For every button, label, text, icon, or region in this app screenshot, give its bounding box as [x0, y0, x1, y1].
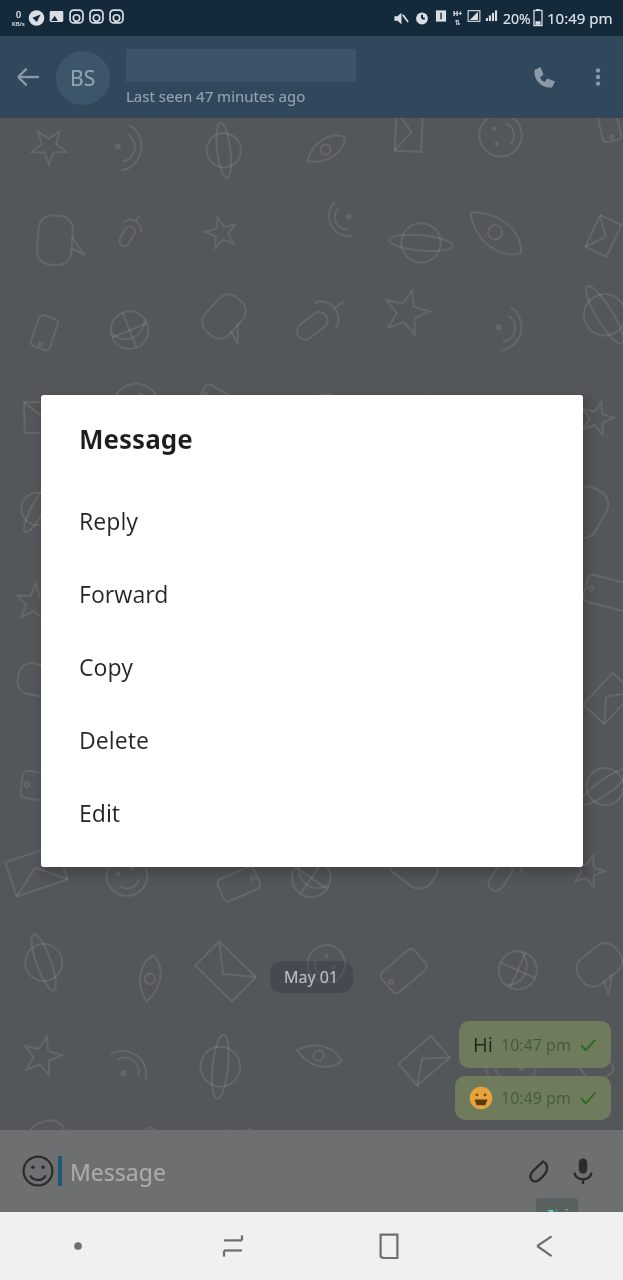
staticText: H+	[453, 9, 463, 19]
button[interactable]: BS	[56, 49, 515, 106]
button[interactable]: Forward	[41, 557, 583, 630]
staticText: Message	[70, 1156, 517, 1187]
button[interactable]: 10:49 pm	[455, 1076, 611, 1120]
staticText: 10:49 pm	[547, 8, 613, 28]
button[interactable]: Home	[311, 1212, 467, 1280]
button[interactable]: Back	[0, 49, 56, 105]
staticText: Edit	[79, 797, 121, 828]
button[interactable]: Emoji	[18, 1151, 58, 1191]
button[interactable]: Delete	[41, 703, 583, 776]
staticText: KB/s	[12, 20, 25, 28]
staticText: Message	[79, 421, 193, 456]
staticText: May 01	[284, 966, 339, 988]
staticText: ⇅	[455, 19, 461, 27]
staticText: 10:47 pm	[501, 1034, 571, 1056]
button[interactable]: Attach	[517, 1149, 561, 1193]
staticText: 20%	[503, 9, 531, 28]
button[interactable]: Copy	[41, 630, 583, 703]
staticText: BS	[70, 64, 96, 93]
staticText: Copy	[79, 651, 133, 682]
button[interactable]: Edit	[41, 776, 583, 849]
staticText: Forward	[79, 578, 169, 609]
button[interactable]: Voice message	[561, 1149, 605, 1193]
staticText: Last seen 47 minutes ago	[126, 86, 306, 106]
staticText: 10:49 pm	[501, 1087, 571, 1109]
button[interactable]: Back	[467, 1212, 623, 1280]
button[interactable]: Hi	[459, 1021, 611, 1068]
button[interactable]: Menu dot	[0, 1212, 155, 1280]
staticText: Hi	[473, 1031, 493, 1058]
button[interactable]: Split screen	[155, 1212, 311, 1280]
staticText: Reply	[79, 505, 139, 536]
button[interactable]: More options	[573, 52, 623, 102]
staticText: ترنج	[547, 1204, 569, 1218]
staticText: 0	[16, 8, 22, 20]
button[interactable]: Reply	[41, 484, 583, 557]
staticText: Delete	[79, 724, 149, 755]
button[interactable]: Call	[515, 48, 573, 106]
